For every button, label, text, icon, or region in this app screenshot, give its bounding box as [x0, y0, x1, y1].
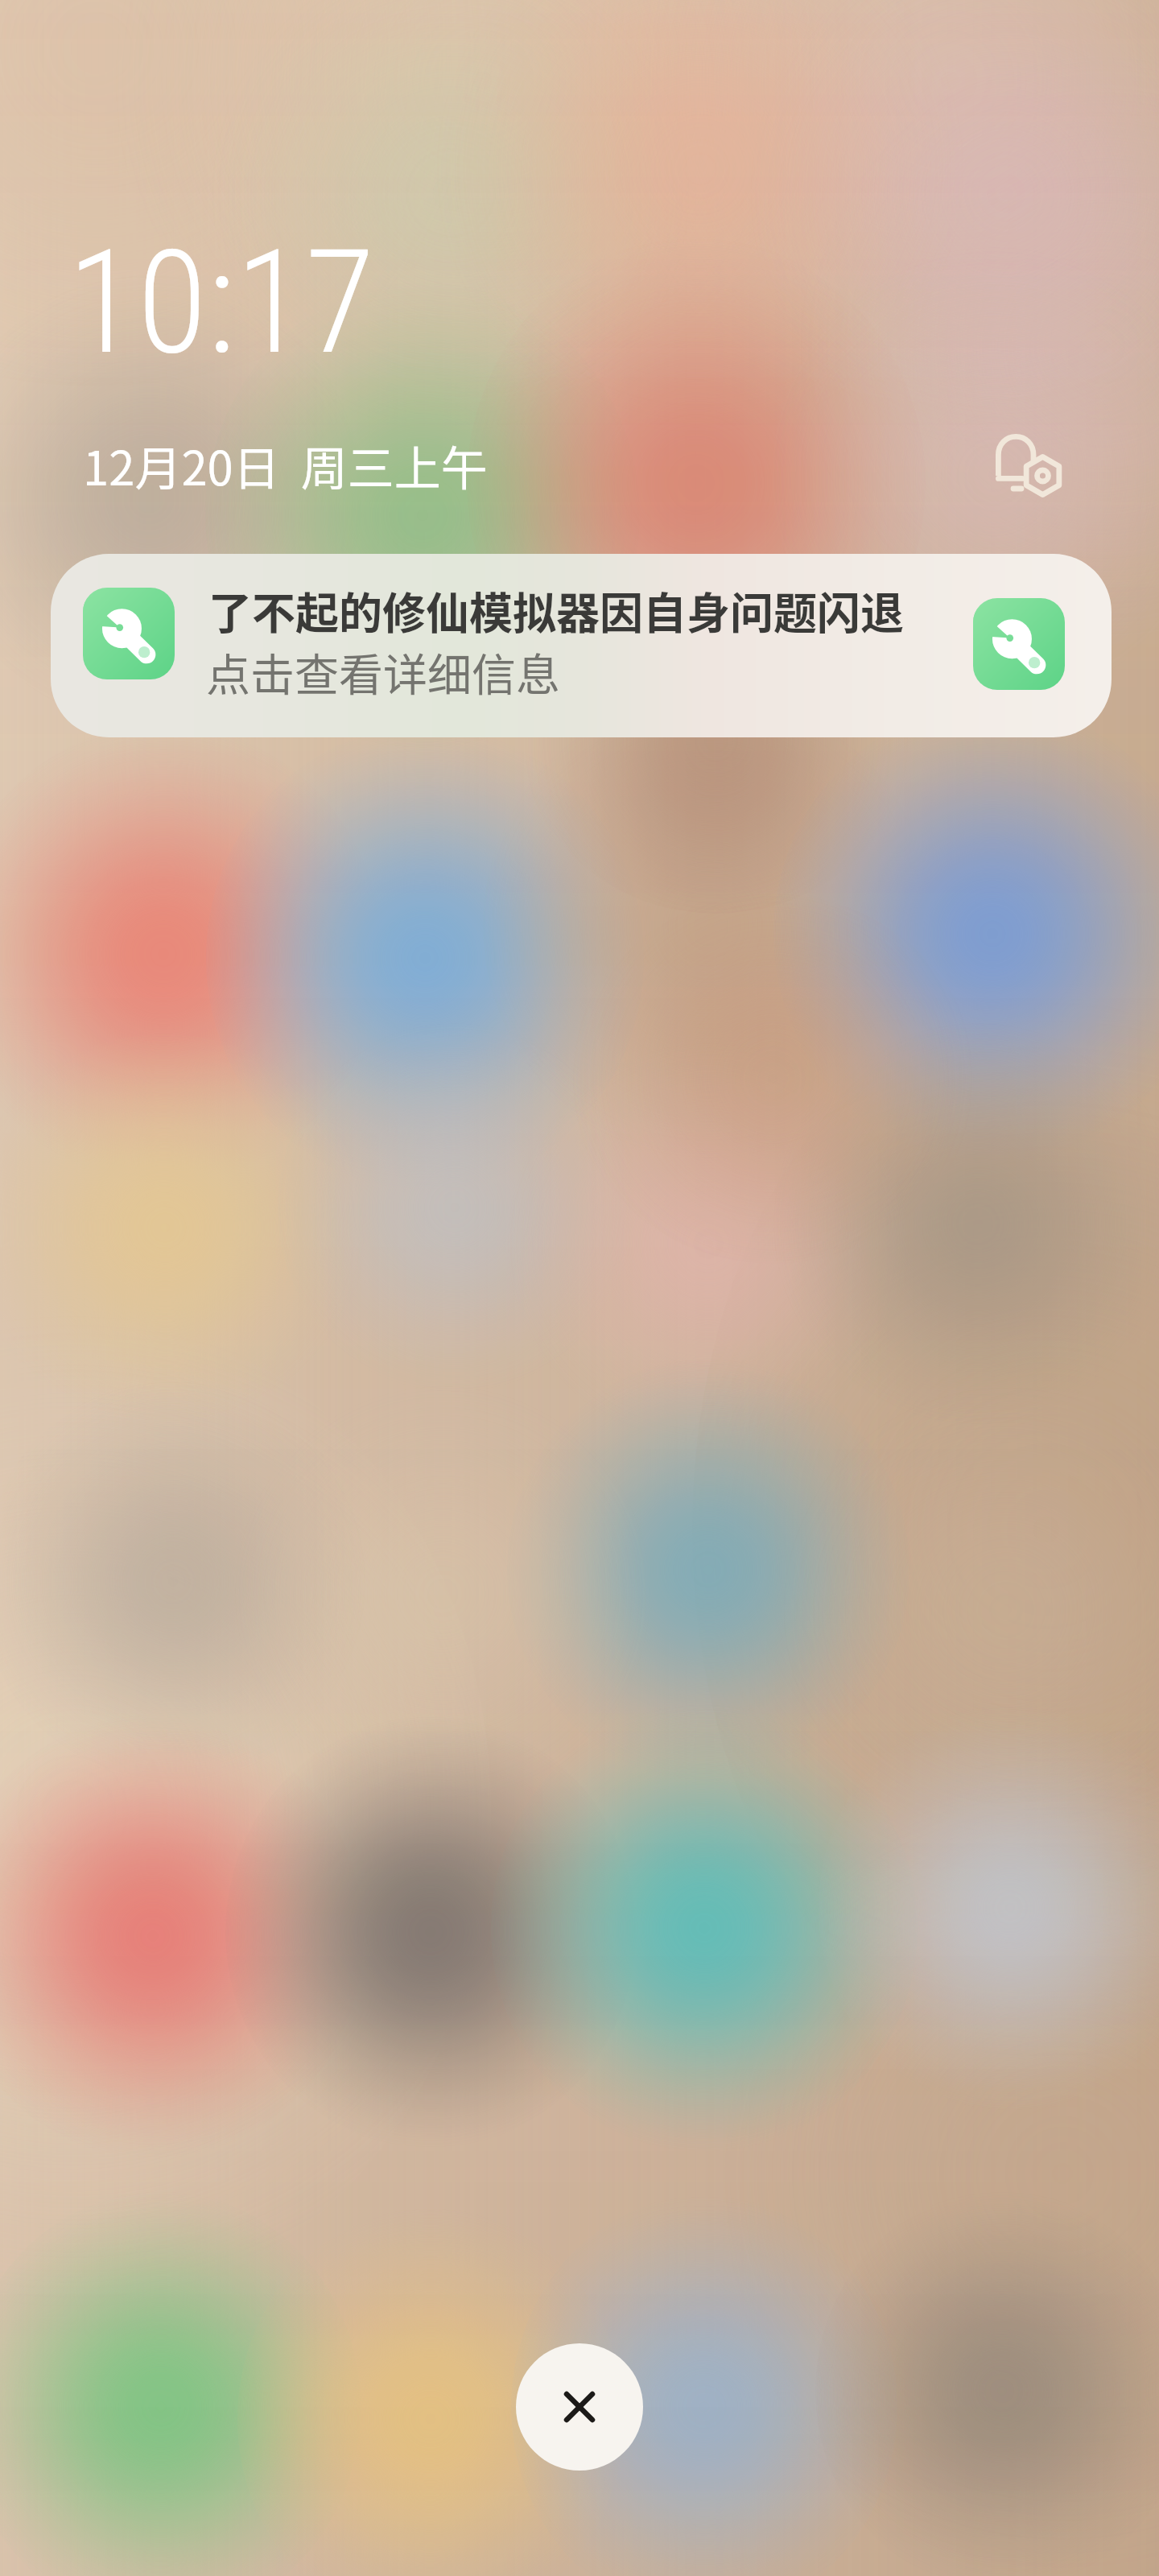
staticText: 了不起的修仙模拟器因自身问题闪退	[208, 579, 904, 642]
staticText: 点击查看详细信息	[206, 639, 561, 704]
button[interactable]: Notification settings	[964, 401, 1093, 530]
button[interactable]: Close	[516, 2343, 643, 2471]
staticText: 12月20日 周三上午	[83, 431, 488, 499]
button[interactable]: 了不起的修仙模拟器因自身问题闪退	[51, 554, 1112, 737]
staticText: 10:17	[68, 219, 375, 387]
